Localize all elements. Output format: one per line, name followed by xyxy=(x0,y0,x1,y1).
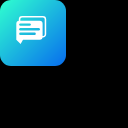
button[interactable]: Chat xyxy=(0,0,66,66)
